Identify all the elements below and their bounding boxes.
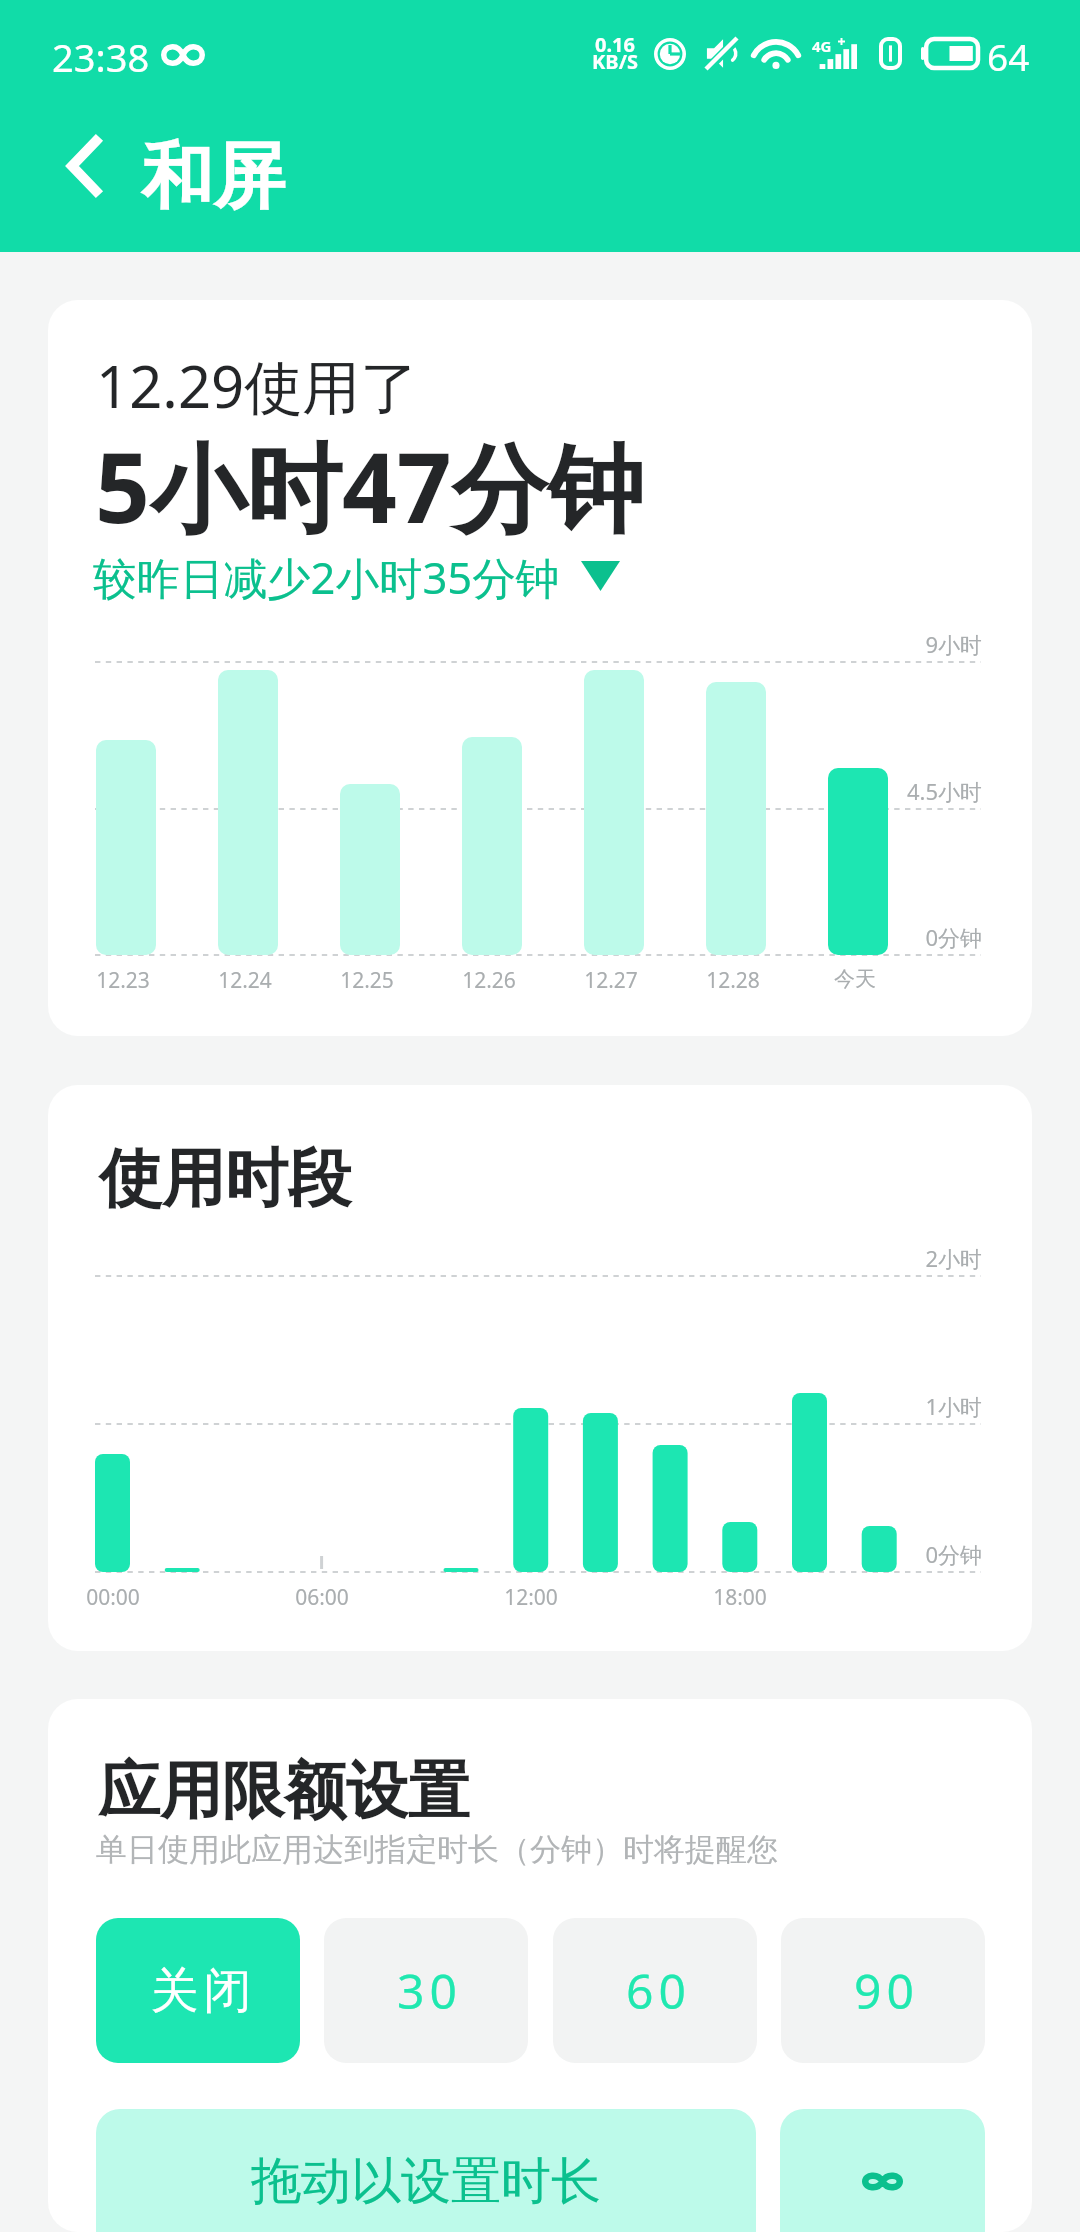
button[interactable]: 90 — [781, 1918, 985, 2063]
button[interactable]: 拖动以设置时长 — [96, 2109, 756, 2232]
staticText: 90 — [854, 1958, 919, 2023]
staticText: 4G — [812, 36, 832, 56]
staticText: 今天 — [785, 966, 925, 992]
staticText: 4.5小时 — [682, 776, 982, 806]
staticText: 00:00 — [48, 1583, 183, 1612]
staticText: 12.27 — [541, 966, 681, 995]
button[interactable]: Unlimited — [780, 2109, 985, 2232]
staticText: 18:00 — [670, 1583, 810, 1612]
staticText: 0分钟 — [682, 1539, 982, 1569]
staticText: 12.29使用了 — [96, 346, 419, 425]
staticText: 5小时47分钟 — [95, 420, 644, 551]
staticText: 06:00 — [252, 1583, 392, 1612]
staticText: 12.23 — [53, 966, 193, 995]
staticText: 30 — [397, 1958, 462, 2023]
staticText: 12.26 — [419, 966, 559, 995]
button[interactable]: Back — [40, 112, 128, 220]
staticText: 1小时 — [682, 1391, 982, 1421]
staticText: 关闭 — [148, 1961, 254, 2021]
staticText: 23:38 — [52, 31, 150, 83]
staticText: 应用限额设置 — [98, 1752, 470, 1830]
staticText: 0.16 — [590, 31, 640, 58]
staticText: 单日使用此应用达到指定时长（分钟）时将提醒您 — [96, 1830, 778, 1869]
staticText: 64 — [987, 31, 1030, 81]
staticText: 0分钟 — [682, 922, 982, 952]
staticText: 12:00 — [461, 1583, 601, 1612]
staticText: 12.24 — [175, 966, 315, 995]
staticText: 拖动以设置时长 — [251, 2150, 601, 2213]
staticText: KB/S — [590, 48, 640, 75]
button[interactable]: 60 — [553, 1918, 757, 2063]
button[interactable]: 30 — [324, 1918, 528, 2063]
staticText: 和屏 — [141, 132, 285, 223]
staticText: 使用时段 — [99, 1139, 351, 1218]
staticText: 12.28 — [663, 966, 803, 995]
staticText: 2小时 — [682, 1243, 982, 1273]
staticText: 60 — [626, 1958, 691, 2023]
staticText: 12.25 — [297, 966, 437, 995]
button[interactable]: 关闭 — [96, 1918, 300, 2063]
staticText: 9小时 — [682, 629, 982, 659]
staticText: 较昨日减少2小时35分钟 — [93, 547, 560, 606]
